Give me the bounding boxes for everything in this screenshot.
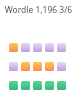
staticText: Wordle 1,196 3/6 xyxy=(0,4,77,16)
